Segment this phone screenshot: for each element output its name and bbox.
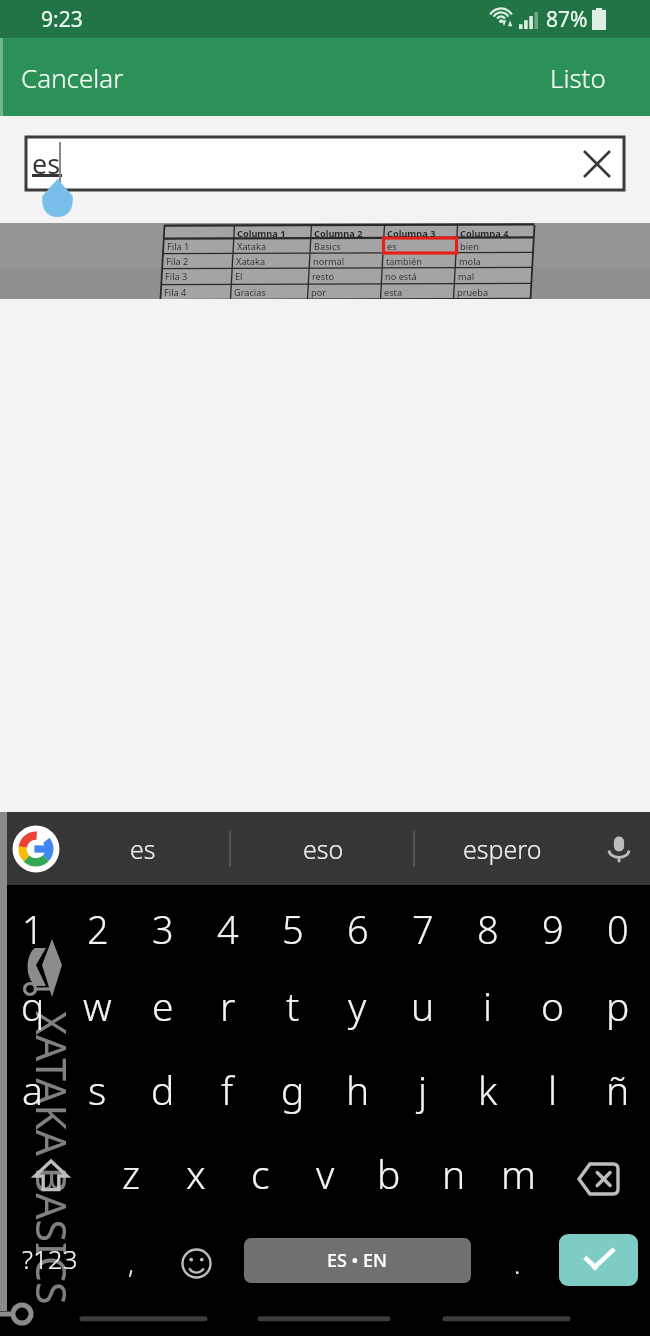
button[interactable]: es: [63, 812, 223, 885]
staticText: 4: [217, 903, 239, 955]
button[interactable]: j: [390, 1047, 455, 1131]
button[interactable]: Intro: [559, 1234, 638, 1286]
button[interactable]: y: [325, 963, 390, 1047]
button[interactable]: f: [195, 1047, 260, 1131]
staticText: Cancelar: [21, 60, 124, 95]
staticText: y: [348, 979, 367, 1032]
button[interactable]: q: [0, 963, 65, 1047]
staticText: t: [286, 979, 300, 1032]
button[interactable]: 3: [130, 890, 195, 968]
staticText: 1: [22, 903, 44, 955]
button[interactable]: n: [422, 1141, 486, 1205]
button[interactable]: 9: [520, 890, 585, 968]
staticText: k: [478, 1063, 498, 1116]
staticText: eso: [303, 832, 344, 866]
staticText: Fila 2: [166, 255, 189, 268]
button[interactable]: Retroceso: [566, 1141, 630, 1205]
button[interactable]: Mayúsculas: [21, 1146, 81, 1206]
button[interactable]: 0: [585, 890, 650, 968]
staticText: Basics: [314, 240, 341, 253]
button[interactable]: h: [325, 1047, 390, 1131]
staticText: ?123: [22, 1241, 78, 1276]
staticText: 0: [607, 903, 629, 955]
staticText: z: [122, 1147, 141, 1200]
button[interactable]: i: [455, 963, 520, 1047]
staticText: mal: [458, 270, 475, 283]
staticText: n: [442, 1147, 466, 1200]
staticText: Columna 3: [387, 227, 436, 240]
staticText: Columna 4: [460, 227, 509, 240]
button[interactable]: Listo: [528, 48, 650, 107]
staticText: x: [186, 1147, 206, 1200]
button[interactable]: v: [293, 1141, 357, 1205]
staticText: ñ: [606, 1063, 630, 1116]
staticText: El: [235, 270, 243, 283]
button[interactable]: 4: [195, 890, 260, 968]
staticText: es: [387, 240, 397, 253]
button[interactable]: d: [130, 1047, 195, 1131]
button[interactable]: s: [65, 1047, 130, 1131]
button[interactable]: eso: [243, 812, 403, 885]
staticText: Columna 1: [237, 227, 286, 240]
button[interactable]: Cancelar: [0, 48, 146, 107]
button[interactable]: ES • EN: [244, 1238, 471, 1283]
button[interactable]: Borrar: [576, 143, 618, 185]
staticText: l: [548, 1063, 558, 1116]
button[interactable]: 1: [0, 890, 65, 968]
button[interactable]: Voz: [596, 826, 642, 872]
staticText: a: [22, 1063, 43, 1116]
button[interactable]: espero: [422, 812, 582, 885]
button[interactable]: 7: [390, 890, 455, 968]
button[interactable]: .: [491, 1237, 543, 1289]
staticText: u: [411, 979, 435, 1032]
button[interactable]: ?123: [12, 1223, 88, 1293]
staticText: b: [377, 1147, 401, 1200]
button[interactable]: p: [585, 963, 650, 1047]
button[interactable]: x: [164, 1141, 228, 1205]
button[interactable]: l: [520, 1047, 585, 1131]
button[interactable]: a: [0, 1047, 65, 1131]
staticText: Listo: [550, 60, 606, 95]
staticText: Xataka: [236, 255, 266, 268]
button[interactable]: g: [260, 1047, 325, 1131]
staticText: 5: [282, 903, 304, 955]
staticText: o: [541, 979, 565, 1032]
staticText: Fila 3: [165, 270, 188, 283]
staticText: s: [88, 1063, 107, 1116]
button[interactable]: ñ: [585, 1047, 650, 1131]
staticText: también: [386, 255, 422, 268]
staticText: Xataka: [237, 240, 267, 253]
button[interactable]: Emoji: [170, 1237, 222, 1289]
staticText: Columna 2: [314, 227, 363, 240]
staticText: no está: [385, 270, 417, 283]
staticText: 7: [412, 903, 434, 955]
staticText: Fila 4: [164, 286, 187, 299]
button[interactable]: c: [228, 1141, 292, 1205]
staticText: 6: [347, 903, 369, 955]
staticText: p: [606, 979, 630, 1032]
button[interactable]: 8: [455, 890, 520, 968]
staticText: esta: [384, 286, 403, 299]
staticText: es: [32, 145, 61, 182]
button[interactable]: m: [486, 1141, 550, 1205]
button[interactable]: 5: [260, 890, 325, 968]
button[interactable]: ,: [103, 1235, 159, 1291]
button[interactable]: r: [195, 963, 260, 1047]
staticText: XATAKA BASICS: [24, 1011, 80, 1305]
staticText: 9:23: [41, 5, 83, 34]
button[interactable]: Google: [12, 825, 60, 873]
button[interactable]: u: [390, 963, 455, 1047]
staticText: 9: [542, 903, 564, 955]
button[interactable]: t: [260, 963, 325, 1047]
button[interactable]: w: [65, 963, 130, 1047]
button[interactable]: 6: [325, 890, 390, 968]
button[interactable]: e: [130, 963, 195, 1047]
staticText: j: [418, 1063, 428, 1116]
staticText: 3: [152, 903, 174, 955]
button[interactable]: o: [520, 963, 585, 1047]
button[interactable]: z: [99, 1141, 163, 1205]
button[interactable]: b: [357, 1141, 421, 1205]
button[interactable]: 2: [65, 890, 130, 968]
button[interactable]: k: [455, 1047, 520, 1131]
staticText: r: [220, 979, 236, 1032]
